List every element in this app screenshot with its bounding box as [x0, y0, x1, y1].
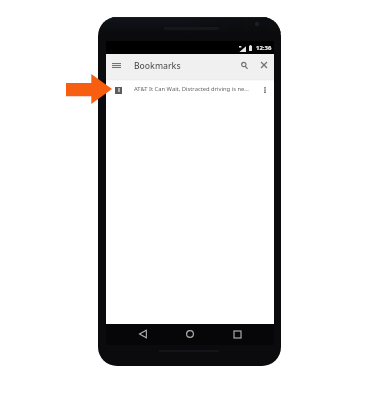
button[interactable]: Close: [255, 57, 273, 73]
button[interactable]: Back: [133, 324, 153, 344]
button[interactable]: More options: [258, 83, 272, 97]
staticText: 12:36: [256, 44, 272, 52]
button[interactable]: Home: [180, 324, 200, 344]
button[interactable]: Search: [235, 57, 253, 73]
button[interactable]: AT&T It Can Wait, Distracted driving is …: [106, 79, 274, 97]
button[interactable]: Recent apps: [227, 324, 247, 344]
button[interactable]: Open navigation menu: [107, 57, 125, 73]
staticText: AT&T It Can Wait, Distracted driving is …: [134, 85, 254, 93]
staticText: Bookmarks: [134, 60, 181, 72]
